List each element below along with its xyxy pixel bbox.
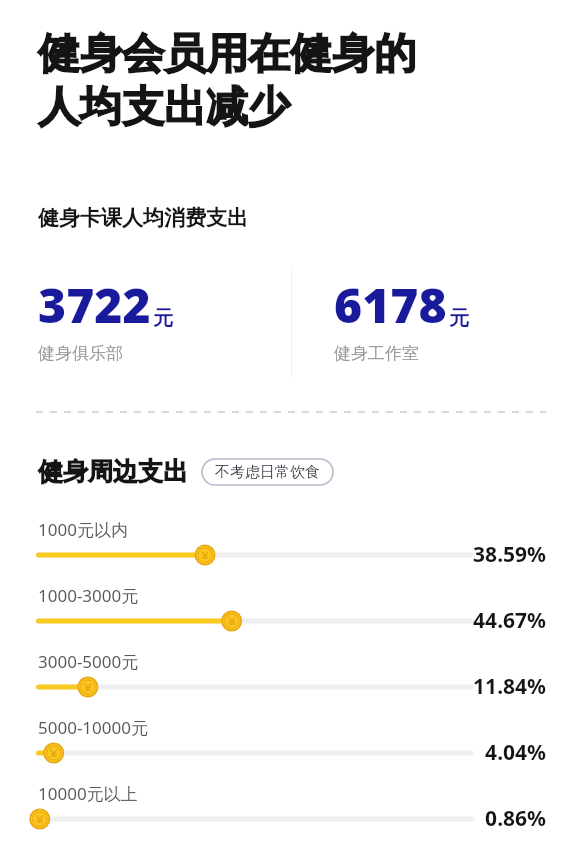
staticText: 38.59%: [473, 540, 546, 569]
staticText: 健身俱乐部: [38, 343, 123, 364]
button[interactable]: [30, 608, 480, 634]
staticText: 1000元以内: [38, 518, 128, 541]
staticText: 不考虑日常饮食: [215, 463, 320, 482]
staticText: 3000-5000元: [38, 650, 139, 673]
staticText: 44.67%: [473, 606, 546, 635]
staticText: 10000元以上: [38, 782, 138, 805]
staticText: 0.86%: [485, 804, 546, 833]
button[interactable]: 不考虑日常饮食: [202, 459, 333, 485]
staticText: 健身工作室: [334, 343, 419, 364]
staticText: 健身周边支出: [38, 456, 188, 487]
staticText: 1000-3000元: [38, 584, 139, 607]
staticText: 11.84%: [473, 672, 546, 701]
staticText: 人均支出减少: [38, 81, 290, 134]
button[interactable]: [30, 674, 480, 700]
staticText: 元: [153, 306, 173, 331]
button[interactable]: [30, 806, 480, 832]
staticText: 5000-10000元: [38, 716, 148, 739]
button[interactable]: [30, 740, 480, 766]
staticText: 健身会员用在健身的: [38, 28, 416, 81]
staticText: 4.04%: [485, 738, 546, 767]
staticText: 6178: [334, 272, 447, 337]
staticText: 3722: [38, 272, 151, 337]
staticText: 健身卡课人均消费支出: [38, 205, 248, 231]
staticText: 元: [449, 306, 469, 331]
button[interactable]: [30, 542, 480, 568]
